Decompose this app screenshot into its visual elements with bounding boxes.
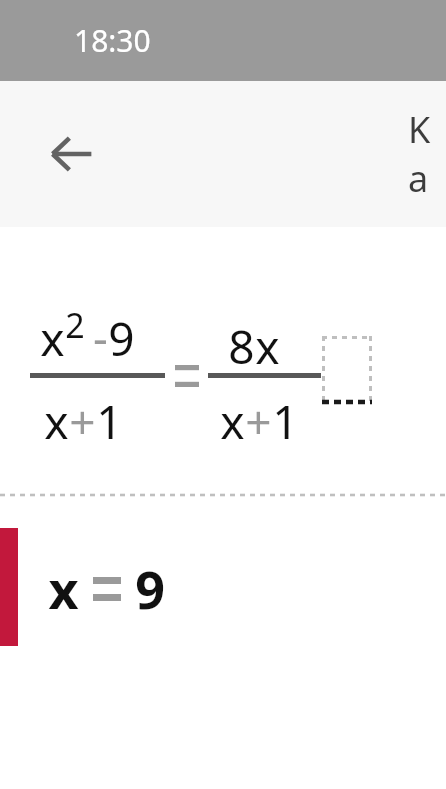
button[interactable]: x	[0, 527, 446, 655]
staticText: 9	[108, 307, 135, 370]
button[interactable]: Back	[36, 118, 108, 190]
staticText: Ka	[408, 105, 446, 203]
staticText: 18:30	[74, 20, 151, 61]
staticText: 9	[135, 553, 165, 624]
staticText: +	[69, 390, 96, 453]
button[interactable]: Answer box	[322, 336, 372, 404]
staticText: x	[220, 390, 245, 453]
button[interactable]: x	[0, 227, 446, 494]
staticText: x	[48, 553, 79, 624]
staticText: x	[255, 315, 280, 378]
staticText: 1	[272, 390, 299, 453]
staticText: x	[44, 390, 69, 453]
staticText: x	[40, 307, 65, 370]
staticText: 8	[228, 315, 255, 378]
staticText: 2	[65, 302, 85, 348]
staticText: -	[93, 305, 108, 368]
staticText: +	[245, 390, 272, 453]
staticText: 1	[96, 390, 123, 453]
